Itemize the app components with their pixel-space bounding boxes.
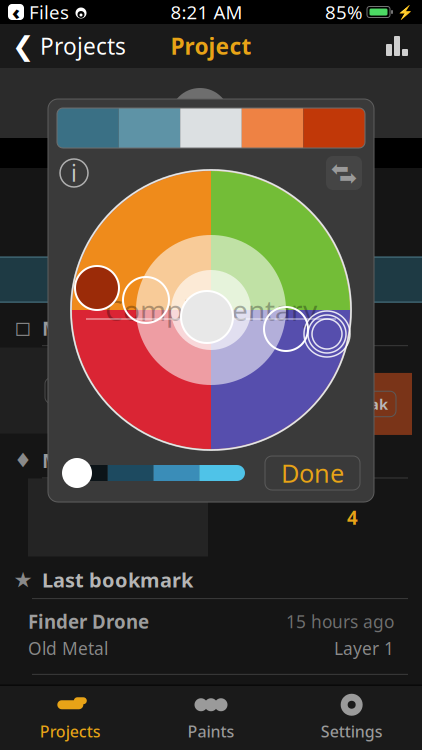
staticText: ‹ <box>12 0 20 25</box>
staticText: 4 <box>347 505 358 530</box>
staticText: Miniatures <box>42 447 151 473</box>
staticText: Files <box>29 0 69 24</box>
staticText: ♦︎ <box>14 449 32 472</box>
button[interactable]: Swap colors <box>326 156 362 190</box>
staticText: Done <box>281 456 344 490</box>
staticText: Red Cloak <box>316 394 388 414</box>
staticText: 8:21 AM <box>170 0 242 24</box>
staticText: Sample Project <box>81 174 340 220</box>
staticText: Projects <box>40 721 101 742</box>
staticText: Project <box>170 31 251 61</box>
staticText: Old Metal <box>28 637 108 660</box>
button[interactable]: Statistics <box>372 24 422 68</box>
staticText: Complementary <box>105 291 317 329</box>
button[interactable]: Paints <box>141 686 281 750</box>
staticText: i <box>71 158 77 188</box>
staticText: ★ <box>13 568 32 592</box>
staticText: Projects <box>40 31 126 61</box>
staticText: 15 hours ago <box>286 610 394 633</box>
staticText: This is a sample <box>81 222 229 249</box>
staticText: Finder Drone <box>28 609 149 634</box>
staticText: Layer 1 <box>334 637 394 660</box>
staticText: ⬅ <box>331 156 349 181</box>
button[interactable]: ❮ <box>0 24 138 68</box>
staticText: Settings <box>321 721 383 742</box>
button[interactable]: Done <box>265 456 360 490</box>
staticText: 7 <box>346 346 357 371</box>
button[interactable]: Settings <box>281 686 422 750</box>
button[interactable]: Information <box>60 159 88 187</box>
staticText: Last bookmark <box>42 566 193 593</box>
button[interactable]: Finder Drone <box>0 599 422 674</box>
staticText: ◻︎ <box>14 316 31 339</box>
staticText: Black Primer <box>53 381 147 400</box>
button[interactable]: Projects <box>0 686 141 750</box>
staticText: ⚡ <box>397 4 414 20</box>
staticText: ➡ <box>339 165 357 190</box>
staticText: 85% <box>325 0 363 24</box>
staticText: Materials <box>42 315 137 341</box>
staticText: ❮ <box>12 31 34 61</box>
staticText: Paints <box>187 721 234 742</box>
